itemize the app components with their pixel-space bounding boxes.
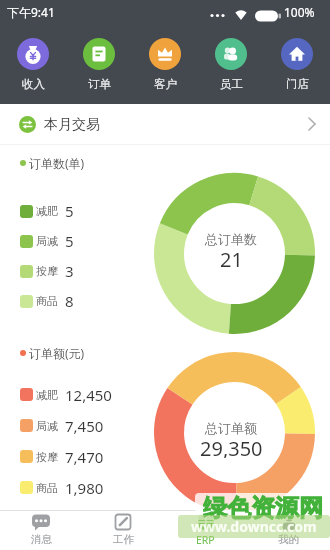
staticText: 门店 [286, 77, 309, 91]
staticText: 总订单数 [205, 231, 257, 247]
button[interactable]: ERP [164, 510, 247, 550]
staticText: 29,350 [200, 435, 263, 458]
button[interactable]: 我的 [247, 510, 330, 550]
staticText: 订单 [88, 77, 111, 91]
staticText: 3 [65, 261, 74, 281]
staticText: 按摩 [36, 450, 58, 464]
staticText: 12,450 [65, 385, 112, 405]
button[interactable]: 员工 [198, 38, 264, 91]
staticText: 减肥 [36, 388, 58, 402]
staticText: 局减 [36, 419, 58, 433]
staticText: 按摩 [36, 264, 58, 278]
staticText: 减肥 [36, 204, 58, 218]
staticText: 1,980 [65, 478, 104, 498]
button[interactable]: 客户 [132, 38, 198, 91]
staticText: 总订单额 [205, 420, 257, 436]
staticText: 局减 [36, 234, 58, 248]
staticText: 我的 [278, 533, 299, 546]
staticText: 订单额(元) [29, 345, 85, 361]
button[interactable]: 门店 [264, 38, 330, 91]
button[interactable]: 本月交易 [0, 104, 330, 145]
staticText: 员工 [220, 77, 243, 91]
staticText: 收入 [22, 77, 45, 91]
staticText: 商品 [36, 481, 58, 495]
staticText: 消息 [31, 533, 52, 546]
staticText: 本月交易 [44, 116, 100, 134]
staticText: 21 [220, 246, 243, 269]
button[interactable]: 消息 [0, 510, 82, 550]
button[interactable]: 工作 [82, 510, 164, 550]
staticText: 8 [65, 291, 74, 311]
staticText: 绿色资源网 [203, 493, 323, 520]
staticText: 工作 [113, 533, 134, 546]
staticText: 客户 [154, 77, 177, 91]
staticText: 商品 [36, 294, 58, 308]
staticText: 订单数(单) [29, 155, 85, 171]
staticText: 下午9:41 [7, 4, 55, 20]
staticText: 7,470 [65, 447, 104, 467]
staticText: www.downcc.com [191, 517, 317, 536]
staticText: 5 [65, 231, 74, 251]
staticText: 5 [65, 201, 74, 221]
button[interactable]: 收入 [0, 38, 66, 91]
staticText: ERP [196, 533, 215, 547]
staticText: 100% [284, 4, 315, 20]
button[interactable]: 订单 [66, 38, 132, 91]
staticText: 7,450 [65, 416, 104, 436]
